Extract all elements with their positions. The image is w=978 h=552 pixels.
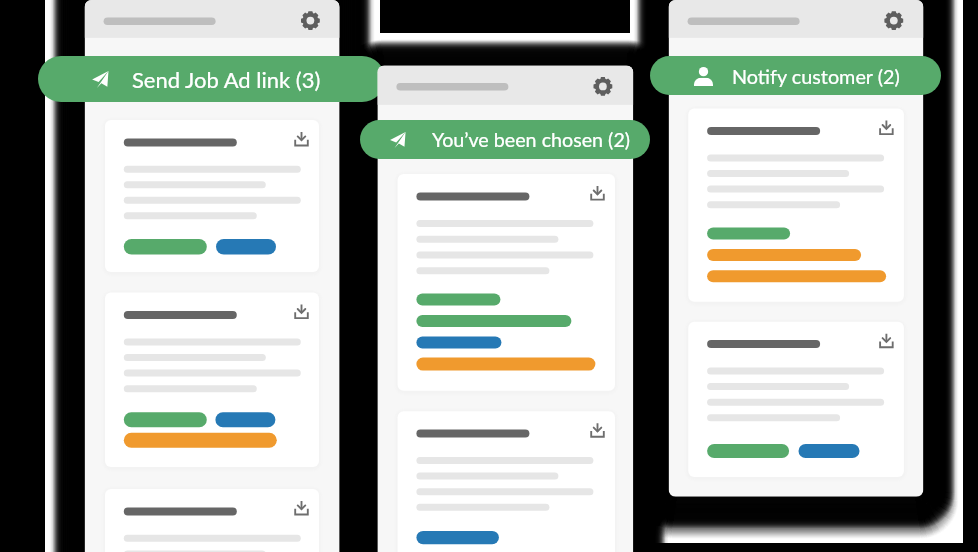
staticText: Send Job Ad link (3) [132,66,321,92]
other: Notify [694,67,713,86]
button[interactable]: Notify [650,56,941,95]
staticText: Notify customer (2) [732,64,900,88]
button[interactable]: Send [360,120,650,159]
staticText: You’ve been chosen (2) [432,128,631,152]
other: Send [389,131,407,149]
button[interactable]: Send [38,56,385,102]
other: Send [91,70,110,89]
